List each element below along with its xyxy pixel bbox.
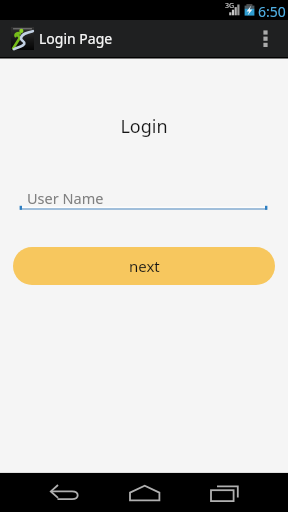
button[interactable]: Back bbox=[0, 472, 96, 512]
button[interactable]: Recent apps bbox=[192, 472, 288, 512]
button[interactable]: User Name bbox=[20, 183, 267, 211]
staticText: Login Page bbox=[39, 29, 113, 48]
button[interactable]: Home bbox=[96, 472, 192, 512]
staticText: Login bbox=[0, 114, 288, 139]
button[interactable]: More options bbox=[254, 20, 288, 57]
staticText: next bbox=[129, 256, 160, 276]
button[interactable]: Login Page bbox=[0, 20, 254, 57]
staticText: 3G bbox=[225, 1, 235, 11]
staticText: 6:50 bbox=[258, 2, 286, 21]
button[interactable]: next bbox=[13, 247, 275, 285]
staticText: User Name bbox=[27, 188, 104, 208]
